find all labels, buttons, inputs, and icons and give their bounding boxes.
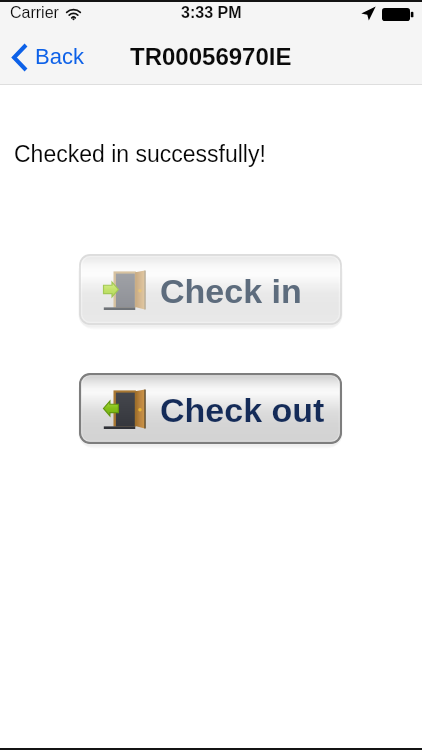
- staticText: TR00056970IE: [130, 43, 292, 70]
- staticText: Back: [35, 44, 84, 69]
- staticText: Carrier: [10, 4, 59, 22]
- button[interactable]: Check in: [79, 254, 342, 325]
- button[interactable]: Check out: [79, 373, 342, 444]
- staticText: Check out: [160, 391, 325, 429]
- staticText: Check in: [160, 272, 302, 310]
- button[interactable]: Back: [0, 35, 96, 80]
- staticText: Checked in successfully!: [14, 141, 266, 167]
- staticText: 3:33 PM: [181, 4, 242, 22]
